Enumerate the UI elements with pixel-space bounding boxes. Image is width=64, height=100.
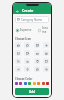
button[interactable]: Icon 1	[15, 42, 21, 48]
button[interactable]: Icon 5	[15, 50, 21, 56]
button[interactable]: Color 6	[37, 82, 40, 85]
button[interactable]: Color 5	[33, 82, 36, 85]
button[interactable]: Color 1	[15, 82, 18, 85]
button[interactable]: Color 2	[19, 82, 22, 85]
button[interactable]: Color 4	[28, 82, 31, 85]
button[interactable]: Category Name	[15, 16, 49, 23]
button[interactable]: Icon 4	[43, 42, 49, 48]
staticText: Category Name	[21, 18, 43, 22]
staticText: Choose Color	[15, 77, 33, 81]
button[interactable]: Icon 2	[24, 42, 30, 48]
button[interactable]: Color 8	[46, 82, 49, 85]
button[interactable]: Add	[15, 88, 49, 95]
button[interactable]: Expense	[15, 27, 33, 33]
staticText: Add	[29, 90, 35, 94]
button[interactable]: Icon 13	[15, 66, 21, 72]
button[interactable]: Icon 14	[24, 66, 30, 72]
staticText: Income	[42, 26, 48, 34]
button[interactable]: Icon 16	[43, 66, 49, 72]
button[interactable]: Icon 8	[43, 50, 49, 56]
button[interactable]: Icon 9	[15, 58, 21, 64]
button[interactable]: Icon 3	[34, 42, 40, 48]
button[interactable]: Icon 7	[34, 50, 40, 56]
button[interactable]: Back	[15, 9, 20, 14]
button[interactable]: Color 3	[24, 82, 27, 85]
button[interactable]: Icon 11	[34, 58, 40, 64]
button[interactable]: Icon 10	[24, 58, 30, 64]
staticText: Create Category	[22, 8, 49, 14]
button[interactable]: Icon 6	[24, 50, 30, 56]
staticText: Expense	[20, 28, 32, 32]
button[interactable]: Income	[37, 25, 49, 35]
button[interactable]: Icon 15	[34, 66, 40, 72]
button[interactable]: Icon 12	[43, 58, 49, 64]
button[interactable]: Color 7	[42, 82, 45, 85]
staticText: Choose Icon	[15, 37, 32, 41]
